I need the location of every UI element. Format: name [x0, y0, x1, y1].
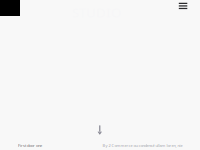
button[interactable]: Scroll down	[97, 125, 102, 135]
button[interactable]: First door one	[18, 143, 42, 148]
staticText: By 2 Commerce ou condensé ullam loren, n…	[102, 143, 182, 148]
staticText: First door one	[18, 143, 42, 148]
button[interactable]: By 2 Commerce ou condensé ullam loren, n…	[102, 143, 182, 148]
button[interactable]: Menu	[0, 0, 200, 150]
